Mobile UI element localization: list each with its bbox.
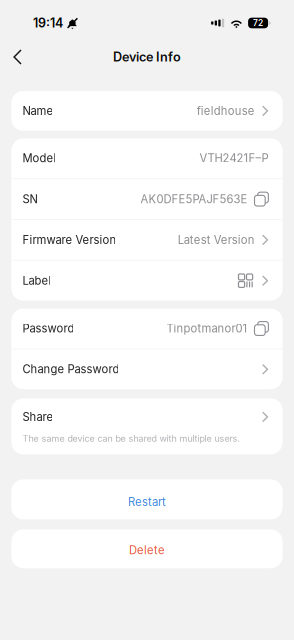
staticText: Delete <box>129 543 165 557</box>
staticText: Restart <box>128 495 166 509</box>
staticText: Firmware Version <box>22 233 116 247</box>
staticText: Tinpotmanor01 <box>166 322 247 335</box>
staticText: AK0DFE5PAJF563E <box>140 192 247 206</box>
staticText: Label <box>22 274 51 287</box>
staticText: Model <box>22 151 56 165</box>
button[interactable]: Name <box>11 91 283 131</box>
button[interactable]: Change Password <box>11 349 283 389</box>
button[interactable]: Password <box>11 309 283 348</box>
button[interactable]: Firmware Version <box>11 220 283 260</box>
button[interactable]: Label <box>11 261 283 301</box>
button[interactable]: Model <box>11 138 283 178</box>
staticText: SN <box>22 192 37 206</box>
staticText: Latest Version <box>178 233 255 247</box>
staticText: Share <box>22 410 53 424</box>
staticText: VTH2421F–P <box>199 151 268 165</box>
staticText: 19:14 <box>33 15 63 31</box>
button[interactable]: Restart <box>11 479 283 519</box>
button[interactable]: Delete <box>11 529 283 568</box>
staticText: Name <box>22 104 53 118</box>
button[interactable]: SN <box>11 179 283 219</box>
staticText: Device Info <box>113 49 181 65</box>
button[interactable]: Share <box>11 398 283 435</box>
staticText: fieldhouse <box>197 104 255 118</box>
staticText: 72 <box>253 18 263 28</box>
staticText: Change Password <box>22 362 119 376</box>
staticText: Password <box>22 322 74 335</box>
staticText: The same device can be shared with multi… <box>22 433 240 444</box>
button[interactable]: Back <box>4 42 31 72</box>
